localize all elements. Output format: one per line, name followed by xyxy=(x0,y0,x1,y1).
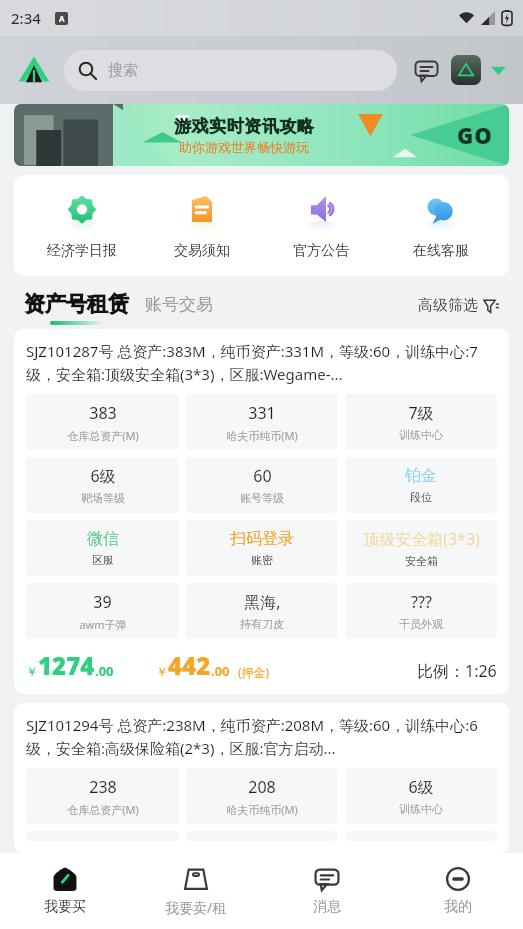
button[interactable]: Logo xyxy=(14,50,54,90)
staticText: awm子弹 xyxy=(79,617,127,632)
button[interactable]: 扫码登录 xyxy=(186,520,338,576)
staticText: 铂金 xyxy=(405,466,437,486)
staticText: 账号交易 xyxy=(145,294,213,315)
staticText: 训练中心 xyxy=(399,428,443,442)
staticText: 黑海, xyxy=(244,591,281,613)
button[interactable]: Expand xyxy=(487,59,509,81)
staticText: 经济学日报 xyxy=(47,242,117,260)
staticText: 208 xyxy=(248,776,276,798)
staticText: 区服 xyxy=(92,553,114,567)
staticText: 训练中心 xyxy=(399,802,443,816)
staticText: 高级筛选 xyxy=(418,296,478,315)
staticText: 238 xyxy=(89,776,117,798)
staticText: 我要卖/租 xyxy=(165,898,227,917)
staticText: 331 xyxy=(248,402,276,424)
staticText: 哈夫币纯币(M) xyxy=(226,428,298,443)
staticText: 仓库总资产(M) xyxy=(67,802,139,817)
button[interactable]: 60 xyxy=(186,457,338,513)
staticText: 靶场等级 xyxy=(81,491,125,505)
staticText: 资产号租赁 xyxy=(24,291,129,317)
staticText: 7级 xyxy=(408,402,434,424)
staticText: .00 xyxy=(211,662,230,680)
button[interactable]: 在线客服 xyxy=(389,189,493,262)
button[interactable]: 微信 xyxy=(26,520,179,576)
staticText: 6级 xyxy=(408,776,434,798)
staticText: 442 xyxy=(168,649,211,682)
button[interactable]: 消息 xyxy=(261,853,392,929)
button[interactable]: 我的 xyxy=(392,853,523,929)
button[interactable]: SJZ101287号 总资产:383M，纯币资产:331M，等级:60，训练中心… xyxy=(14,329,509,694)
button[interactable]: Messages xyxy=(409,53,443,87)
staticText: 微信 xyxy=(87,529,119,549)
staticText: 我的 xyxy=(444,898,472,916)
staticText: 6级 xyxy=(90,465,116,487)
staticText: 比例：1:26 xyxy=(417,660,497,682)
staticText: 助你游戏世界畅快游玩 xyxy=(179,139,309,155)
button[interactable]: 经济学日报 xyxy=(30,189,134,262)
button[interactable]: 39 xyxy=(26,583,179,639)
staticText: .00 xyxy=(95,662,114,680)
staticText: 60 xyxy=(253,465,272,487)
staticText: 扫码登录 xyxy=(230,529,294,549)
staticText: 我要买 xyxy=(44,898,86,916)
button[interactable]: 6级 xyxy=(345,768,497,824)
button[interactable]: 383 xyxy=(26,394,179,450)
button[interactable]: 我要买 xyxy=(0,853,130,929)
button[interactable]: 238 xyxy=(26,768,179,824)
staticText: GO xyxy=(457,120,493,150)
staticText: SJZ101294号 总资产:238M，纯币资产:208M，等级:60，训练中心… xyxy=(26,715,497,759)
staticText: 游戏实时资讯攻略 xyxy=(174,116,314,137)
staticText: 账号等级 xyxy=(240,491,284,505)
staticText: 哈夫币纯币(M) xyxy=(226,802,298,817)
staticText: 交易须知 xyxy=(174,242,230,260)
button[interactable]: ??? xyxy=(345,583,497,639)
staticText: 账密 xyxy=(251,553,273,567)
staticText: 持有刀皮 xyxy=(240,617,284,631)
button[interactable]: 我要卖/租 xyxy=(130,853,261,929)
staticText: 39 xyxy=(93,591,112,613)
staticText: 消息 xyxy=(313,898,341,916)
button[interactable]: 游戏实时资讯攻略 xyxy=(14,104,509,166)
staticText: ￥ xyxy=(156,664,168,679)
button[interactable]: 资产号租赁 xyxy=(24,291,129,325)
button[interactable]: 铂金 xyxy=(345,457,497,513)
button[interactable]: 208 xyxy=(186,768,338,824)
staticText: 顶级安全箱(3*3) xyxy=(363,528,480,550)
button[interactable]: 7级 xyxy=(345,394,497,450)
staticText: 段位 xyxy=(410,490,432,504)
staticText: 官方公告 xyxy=(293,242,349,260)
staticText: A xyxy=(59,13,65,24)
staticText: 安全箱 xyxy=(405,554,438,568)
staticText: SJZ101287号 总资产:383M，纯币资产:331M，等级:60，训练中心… xyxy=(26,341,497,385)
button[interactable]: 高级筛选 xyxy=(418,296,499,321)
button[interactable]: 6级 xyxy=(26,457,179,513)
button[interactable]: 黑海, xyxy=(186,583,338,639)
staticText: 383 xyxy=(89,402,117,424)
button[interactable]: 交易须知 xyxy=(150,189,254,262)
staticText: 仓库总资产(M) xyxy=(67,428,139,443)
staticText: 搜索 xyxy=(108,61,138,80)
button[interactable]: SJZ101294号 总资产:238M，纯币资产:208M，等级:60，训练中心… xyxy=(14,703,509,853)
staticText: ??? xyxy=(411,591,432,613)
button[interactable]: 官方公告 xyxy=(269,189,373,262)
button[interactable]: Game xyxy=(451,55,481,85)
button[interactable]: 搜索 xyxy=(64,50,397,91)
staticText: 1274 xyxy=(38,649,95,682)
button[interactable]: 账号交易 xyxy=(145,294,213,323)
staticText: 2:34 xyxy=(11,8,41,28)
staticText: 在线客服 xyxy=(413,242,469,260)
staticText: (押金) xyxy=(238,664,270,680)
staticText: ￥ xyxy=(26,664,38,679)
button[interactable]: 331 xyxy=(186,394,338,450)
button[interactable]: 顶级安全箱(3*3) xyxy=(345,520,497,576)
staticText: 干员外观 xyxy=(399,617,443,631)
